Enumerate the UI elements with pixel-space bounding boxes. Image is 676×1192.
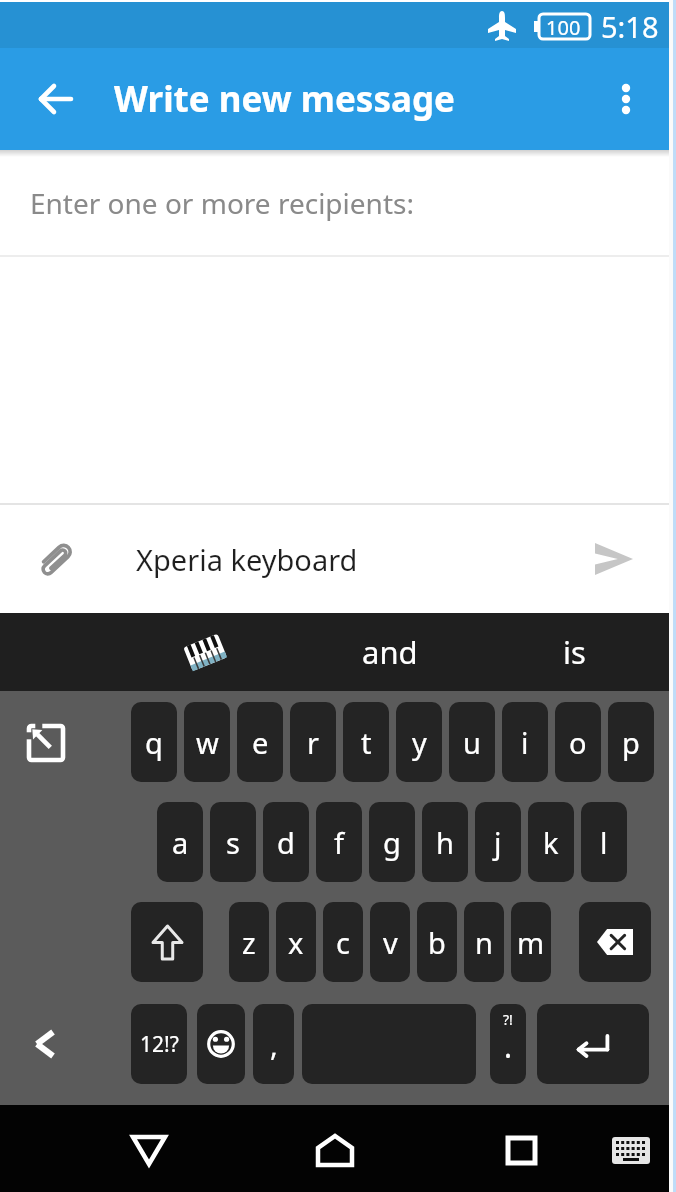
button[interactable]: n	[464, 902, 504, 982]
button[interactable]: e	[237, 702, 283, 782]
staticText: .	[504, 1026, 513, 1067]
button[interactable]	[606, 79, 646, 119]
staticText: a	[172, 823, 189, 862]
button[interactable]	[197, 1004, 245, 1084]
button[interactable]: ,	[253, 1004, 294, 1084]
button[interactable]: v	[370, 902, 410, 982]
button[interactable]: q	[131, 702, 177, 782]
button[interactable]: ?!	[490, 1004, 526, 1084]
button[interactable]	[178, 625, 232, 679]
button[interactable]: x	[276, 902, 316, 982]
button[interactable]: is	[563, 631, 586, 673]
staticText: e	[252, 723, 269, 762]
button[interactable]: u	[449, 702, 495, 782]
button[interactable]: m	[511, 902, 551, 982]
button[interactable]: f	[316, 802, 362, 882]
button[interactable]: s	[210, 802, 256, 882]
staticText: g	[383, 823, 401, 862]
button[interactable]: l	[581, 802, 627, 882]
button[interactable]: Enter one or more recipients:	[0, 150, 676, 257]
staticText: m	[517, 923, 545, 962]
staticText: t	[361, 723, 372, 762]
button[interactable]	[131, 902, 203, 982]
button[interactable]: p	[608, 702, 654, 782]
staticText: o	[569, 723, 587, 762]
button[interactable]: b	[417, 902, 457, 982]
button[interactable]: w	[184, 702, 230, 782]
button[interactable]: t	[343, 702, 389, 782]
button[interactable]	[537, 1004, 649, 1084]
button[interactable]: 12!?	[131, 1004, 187, 1084]
staticText: l	[600, 823, 608, 862]
button[interactable]	[305, 1120, 365, 1180]
button[interactable]	[579, 902, 651, 982]
staticText: b	[428, 923, 446, 962]
button[interactable]	[302, 1004, 476, 1084]
button[interactable]: j	[475, 802, 521, 882]
button[interactable]	[601, 1120, 661, 1180]
button[interactable]: and	[362, 631, 418, 673]
staticText: 100	[546, 14, 581, 41]
button[interactable]: i	[502, 702, 548, 782]
staticText: j	[494, 823, 502, 862]
button[interactable]: o	[555, 702, 601, 782]
staticText: v	[383, 923, 398, 962]
staticText: 5:18	[601, 7, 659, 46]
staticText: 12!?	[140, 1030, 179, 1059]
button[interactable]	[22, 1021, 68, 1067]
staticText: k	[543, 823, 559, 862]
button[interactable]	[576, 521, 652, 597]
staticText: s	[226, 823, 240, 862]
button[interactable]	[119, 1120, 179, 1180]
staticText: u	[463, 723, 481, 762]
staticText: x	[288, 923, 304, 962]
button[interactable]: h	[422, 802, 468, 882]
button[interactable]: r	[290, 702, 336, 782]
staticText: Xperia keyboard	[136, 540, 576, 579]
staticText: w	[196, 723, 219, 762]
staticText: d	[277, 823, 295, 862]
button[interactable]: g	[369, 802, 415, 882]
staticText: ?!	[503, 1010, 513, 1029]
button[interactable]	[18, 715, 74, 771]
button[interactable]: k	[528, 802, 574, 882]
staticText: is	[563, 631, 586, 673]
staticText: Write new message	[114, 75, 455, 123]
button[interactable]	[0, 521, 76, 597]
staticText: n	[475, 923, 493, 962]
button[interactable]: y	[396, 702, 442, 782]
staticText: ,	[270, 1025, 278, 1064]
staticText: y	[412, 723, 427, 762]
staticText: z	[242, 923, 256, 962]
button[interactable]: c	[323, 902, 363, 982]
button[interactable]: z	[229, 902, 269, 982]
button[interactable]: a	[157, 802, 203, 882]
staticText: q	[145, 723, 163, 762]
staticText: i	[521, 723, 529, 762]
staticText: Enter one or more recipients:	[30, 184, 414, 222]
staticText: h	[436, 823, 454, 862]
staticText: p	[622, 723, 640, 762]
staticText: and	[362, 631, 418, 673]
staticText: r	[307, 723, 319, 762]
staticText: c	[336, 923, 350, 962]
button[interactable]	[24, 67, 88, 131]
button[interactable]: d	[263, 802, 309, 882]
button[interactable]	[491, 1120, 551, 1180]
staticText: f	[334, 823, 344, 862]
